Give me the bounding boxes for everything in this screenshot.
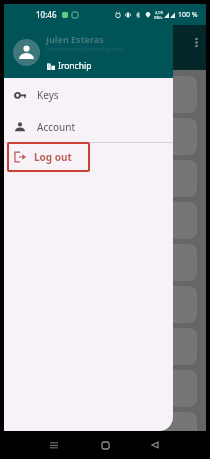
button[interactable]: Recent apps [44,431,64,459]
button[interactable]: Home [95,431,115,459]
button[interactable] [13,412,197,449]
button[interactable] [13,370,197,407]
button[interactable]: Account [4,116,173,138]
button[interactable]: Log out [7,142,90,172]
button[interactable] [13,118,197,155]
staticText: Julen Esteras [46,33,104,45]
button[interactable] [13,160,197,197]
button[interactable]: Back [145,431,165,459]
staticText: Ironchip [58,60,92,72]
button[interactable] [13,286,197,323]
staticText: 4,00 [155,10,163,15]
button[interactable] [13,328,197,365]
staticText: 10:46 [36,9,57,20]
button[interactable]: Keys [4,84,173,106]
button[interactable] [13,244,197,281]
staticText: 100 % [178,10,198,20]
staticText: Account [37,120,76,134]
staticText: Log out [34,150,72,164]
staticText: Keys [37,88,59,102]
button[interactable] [13,76,197,113]
staticText: KB/s [154,15,163,20]
button[interactable]: Profile photo [13,39,40,66]
button[interactable] [13,202,197,239]
staticText: julen.esteras@ironchip.com [46,45,125,53]
button[interactable]: More options [187,33,205,51]
